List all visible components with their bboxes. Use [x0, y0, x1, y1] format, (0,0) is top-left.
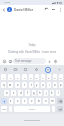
staticText: 9	[54, 76, 56, 79]
button[interactable]: p	[59, 82, 63, 88]
button[interactable]: w	[8, 82, 13, 88]
button[interactable]: h	[38, 90, 42, 96]
button[interactable]: Voice message	[46, 58, 52, 64]
button[interactable]: 5	[29, 74, 33, 80]
button[interactable]: 8	[47, 74, 51, 80]
button[interactable]: k	[50, 90, 54, 96]
staticText: 5	[30, 76, 32, 79]
staticText: .	[53, 108, 54, 111]
button[interactable]: 6	[35, 74, 39, 80]
button[interactable]: u	[41, 82, 45, 88]
button[interactable]: a	[4, 90, 9, 96]
button[interactable]: j	[44, 90, 48, 96]
staticText: 7	[42, 76, 44, 79]
staticText: Today	[0, 43, 64, 47]
button[interactable]: 4	[22, 74, 27, 80]
button[interactable]: Attach	[52, 58, 58, 64]
button[interactable]: 2	[8, 74, 13, 80]
button[interactable]: Space	[14, 106, 50, 112]
staticText: e	[17, 83, 19, 87]
staticText: g	[33, 91, 35, 95]
staticText: u	[42, 83, 44, 87]
button[interactable]: l	[56, 90, 60, 96]
button[interactable]: Text message	[13, 58, 46, 64]
button[interactable]: 9	[53, 74, 57, 80]
button[interactable]: ,	[9, 106, 12, 112]
button[interactable]: o	[53, 82, 57, 88]
button[interactable]: q	[1, 82, 6, 88]
staticText: p	[60, 83, 62, 87]
button[interactable]: 3	[15, 74, 20, 80]
staticText: q	[3, 83, 5, 87]
staticText: 4	[24, 76, 26, 79]
button[interactable]: Voice input	[44, 66, 51, 73]
button[interactable]: Gallery	[7, 58, 13, 64]
button[interactable]: 1	[1, 74, 6, 80]
button[interactable]: y	[35, 82, 39, 88]
button[interactable]: Call	[43, 6, 50, 13]
staticText: j	[46, 91, 47, 95]
button[interactable]: Backspace	[57, 98, 63, 104]
button[interactable]: Enter	[57, 106, 63, 112]
staticText: m	[51, 99, 54, 103]
button[interactable]: v	[29, 98, 34, 104]
button[interactable]: GIF	[12, 66, 18, 72]
button[interactable]: Emoji	[1, 58, 7, 64]
staticText: l	[58, 91, 59, 95]
staticText: 3	[17, 76, 19, 79]
staticText: 6	[36, 76, 38, 79]
staticText: 1	[3, 76, 5, 79]
button[interactable]: 0	[59, 74, 63, 80]
button[interactable]: c	[22, 98, 27, 104]
button[interactable]: ?123	[1, 106, 7, 112]
staticText: Chatting with Daniel Miller · Learn more	[0, 50, 64, 54]
staticText: v	[31, 99, 33, 103]
staticText: f	[27, 91, 28, 95]
button[interactable]: s	[11, 90, 16, 96]
button[interactable]: b	[36, 98, 41, 104]
button[interactable]: Shift	[1, 98, 7, 104]
staticText: c	[24, 99, 26, 103]
staticText: Text message	[15, 59, 32, 63]
button[interactable]: Clipboard	[2, 66, 8, 72]
button[interactable]: Expand	[56, 66, 62, 72]
button[interactable]: g	[32, 90, 36, 96]
button[interactable]: z	[9, 98, 13, 104]
button[interactable]: e	[15, 82, 20, 88]
button[interactable]: i	[47, 82, 51, 88]
staticText: h	[39, 91, 41, 95]
staticText: ?123	[2, 108, 7, 111]
staticText: s	[13, 91, 15, 95]
staticText: n	[45, 99, 47, 103]
staticText: w	[9, 83, 12, 87]
staticText: a	[6, 91, 8, 95]
staticText: b	[38, 99, 40, 103]
button[interactable]: Sticker	[22, 66, 28, 72]
button[interactable]: d	[18, 90, 23, 96]
button[interactable]: m	[50, 98, 55, 104]
staticText: z	[10, 99, 12, 103]
button[interactable]: f	[25, 90, 30, 96]
button[interactable]: t	[29, 82, 33, 88]
button[interactable]: More options	[57, 7, 63, 13]
staticText: English	[29, 108, 36, 111]
button[interactable]: Back	[0, 6, 7, 13]
button[interactable]: Video call	[50, 6, 57, 13]
button[interactable]: 7	[41, 74, 45, 80]
staticText: x	[17, 99, 19, 103]
staticText: o	[54, 83, 56, 87]
button[interactable]: Settings	[33, 66, 39, 72]
staticText: Daniel Miller	[14, 8, 34, 12]
staticText: 2	[10, 76, 12, 79]
staticText: r	[24, 83, 26, 87]
button[interactable]: r	[22, 82, 27, 88]
staticText: 0	[60, 76, 62, 79]
staticText: i	[49, 83, 50, 87]
staticText: k	[51, 91, 53, 95]
button[interactable]: .	[52, 106, 55, 112]
staticText: t	[31, 83, 32, 87]
button[interactable]: n	[43, 98, 48, 104]
staticText: d	[20, 91, 22, 95]
button[interactable]: x	[15, 98, 20, 104]
staticText: y	[36, 83, 38, 87]
